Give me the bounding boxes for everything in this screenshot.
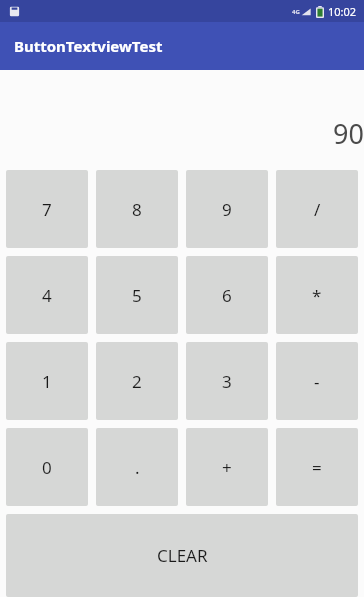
button[interactable]: + — [186, 428, 268, 506]
staticText: 2 — [132, 370, 142, 393]
staticText: CLEAR — [157, 544, 208, 567]
staticText: 1 — [42, 370, 52, 393]
staticText: 4 — [42, 284, 52, 307]
staticText: 7 — [42, 198, 52, 221]
button[interactable]: 3 — [186, 342, 268, 420]
staticText: * — [312, 284, 322, 307]
staticText: 9 — [222, 198, 232, 221]
staticText: 6 — [222, 284, 232, 307]
button[interactable]: 7 — [6, 170, 88, 248]
staticText: = — [312, 456, 322, 479]
staticText: - — [314, 370, 320, 393]
button[interactable]: 1 — [6, 342, 88, 420]
staticText: 8 — [132, 198, 142, 221]
button[interactable]: . — [96, 428, 178, 506]
staticText: 0 — [42, 456, 52, 479]
staticText: 90 — [333, 115, 364, 152]
button[interactable]: * — [276, 256, 358, 334]
staticText: . — [135, 456, 140, 479]
staticText: 10:02 — [328, 4, 357, 19]
button[interactable]: / — [276, 170, 358, 248]
button[interactable]: 2 — [96, 342, 178, 420]
button[interactable]: 4 — [6, 256, 88, 334]
button[interactable]: CLEAR — [6, 514, 358, 597]
button[interactable]: - — [276, 342, 358, 420]
staticText: + — [222, 456, 232, 479]
button[interactable]: 8 — [96, 170, 178, 248]
button[interactable]: 9 — [186, 170, 268, 248]
staticText: ButtonTextviewTest — [14, 36, 163, 56]
staticText: 4G — [292, 8, 300, 16]
button[interactable]: 0 — [6, 428, 88, 506]
staticText: 5 — [132, 284, 142, 307]
staticText: 3 — [222, 370, 232, 393]
button[interactable]: = — [276, 428, 358, 506]
button[interactable]: 6 — [186, 256, 268, 334]
button[interactable]: 5 — [96, 256, 178, 334]
staticText: / — [314, 198, 321, 221]
